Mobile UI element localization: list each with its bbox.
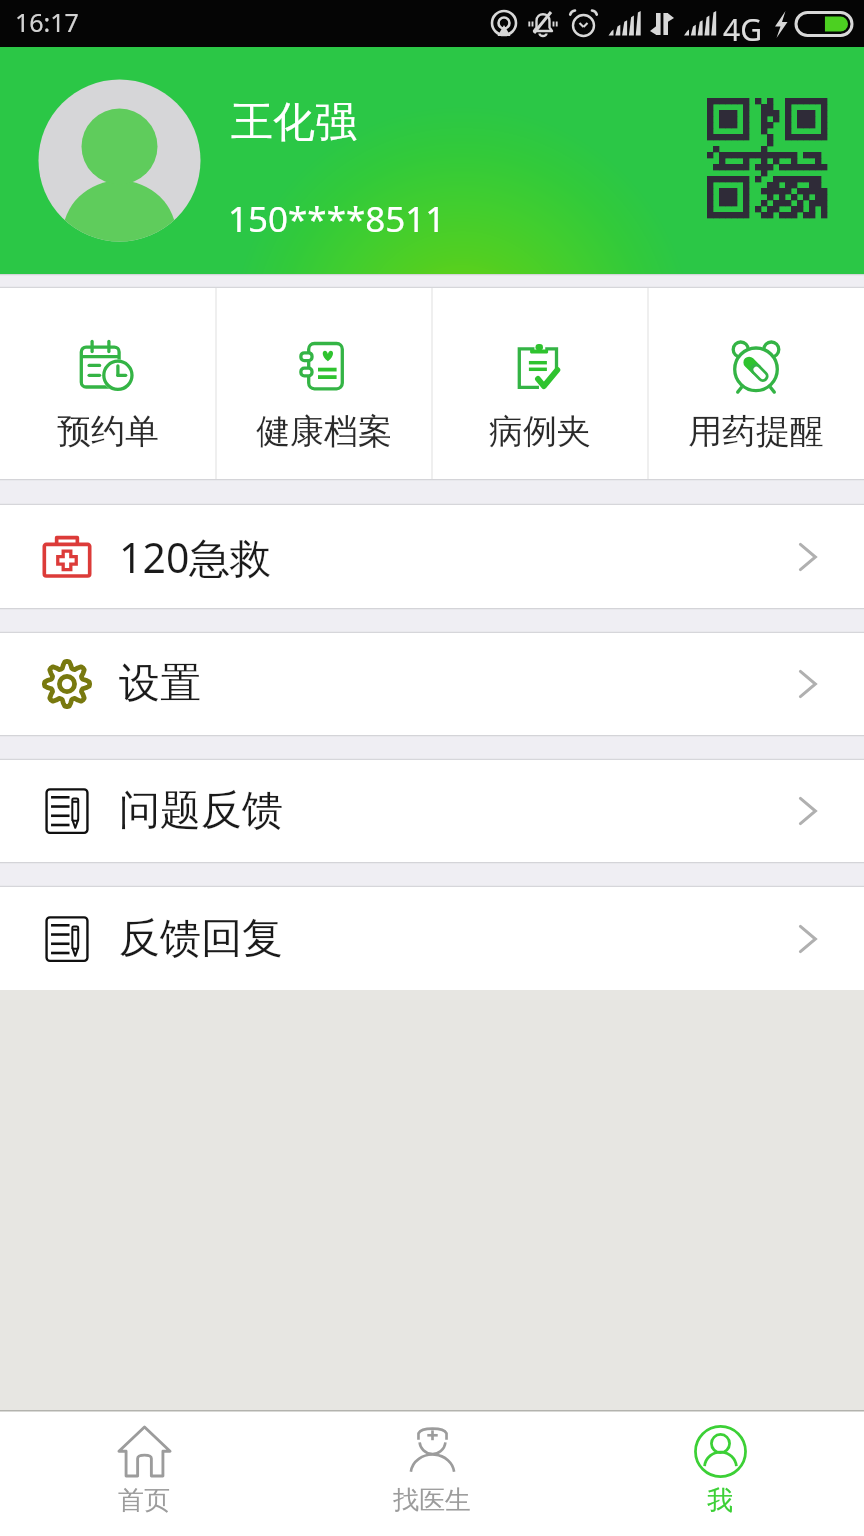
button[interactable]: 120急救 <box>0 505 864 608</box>
staticText: 预约单 <box>57 410 159 453</box>
staticText: 健康档案 <box>256 410 392 453</box>
button[interactable]: 我 <box>576 1410 864 1536</box>
staticText: 4G <box>723 9 762 47</box>
button[interactable]: 病例夹 <box>432 288 648 479</box>
button[interactable]: My QR code <box>707 98 827 218</box>
staticText: 16:17 <box>15 5 79 39</box>
button[interactable]: 找医生 <box>288 1410 576 1536</box>
button[interactable]: 首页 <box>0 1410 288 1536</box>
staticText: 病例夹 <box>489 410 591 453</box>
button[interactable]: 反馈回复 <box>0 887 864 990</box>
staticText: 找医生 <box>393 1484 471 1517</box>
staticText: 120急救 <box>119 529 272 585</box>
button[interactable]: 问题反馈 <box>0 760 864 862</box>
button[interactable]: 预约单 <box>0 288 216 479</box>
staticText: 用药提醒 <box>688 410 824 453</box>
staticText: 问题反馈 <box>119 785 283 837</box>
staticText: 反馈回复 <box>119 913 283 965</box>
staticText: 首页 <box>118 1484 170 1517</box>
staticText: 王化强 <box>231 96 357 149</box>
button[interactable]: 设置 <box>0 633 864 735</box>
staticText: 我 <box>707 1484 733 1517</box>
staticText: 150****8511 <box>228 195 446 243</box>
staticText: 设置 <box>119 658 201 710</box>
button[interactable]: 健康档案 <box>216 288 432 479</box>
button[interactable]: 用药提醒 <box>648 288 864 479</box>
